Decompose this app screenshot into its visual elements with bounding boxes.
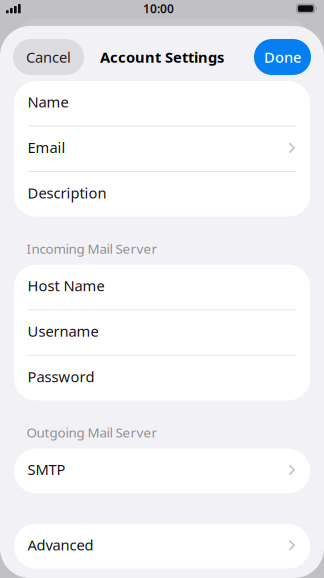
button[interactable]: Name	[14, 81, 310, 126]
staticText: Description	[27, 183, 106, 203]
button[interactable]: Host Name	[14, 265, 310, 309]
button[interactable]: SMTP	[14, 449, 310, 493]
button[interactable]: Description	[14, 172, 310, 217]
button[interactable]: Username	[14, 310, 310, 355]
staticText: Password	[27, 367, 94, 386]
staticText: Cancel	[26, 47, 71, 67]
staticText: Account Settings	[100, 47, 224, 67]
staticText: Outgoing Mail Server	[26, 423, 157, 441]
button[interactable]: Done	[254, 39, 311, 75]
staticText: Done	[264, 47, 301, 67]
button[interactable]: Cancel	[13, 39, 84, 75]
staticText: Incoming Mail Server	[26, 240, 157, 257]
staticText: SMTP	[27, 460, 65, 479]
staticText: Advanced	[27, 535, 93, 554]
button[interactable]: Email	[14, 126, 310, 171]
staticText: Host Name	[27, 276, 104, 295]
staticText: Name	[27, 92, 68, 112]
staticText: Email	[27, 138, 65, 157]
staticText: 10:00	[143, 1, 174, 16]
staticText: Username	[27, 321, 98, 341]
button[interactable]: Password	[14, 356, 310, 400]
button[interactable]: Advanced	[14, 524, 310, 568]
